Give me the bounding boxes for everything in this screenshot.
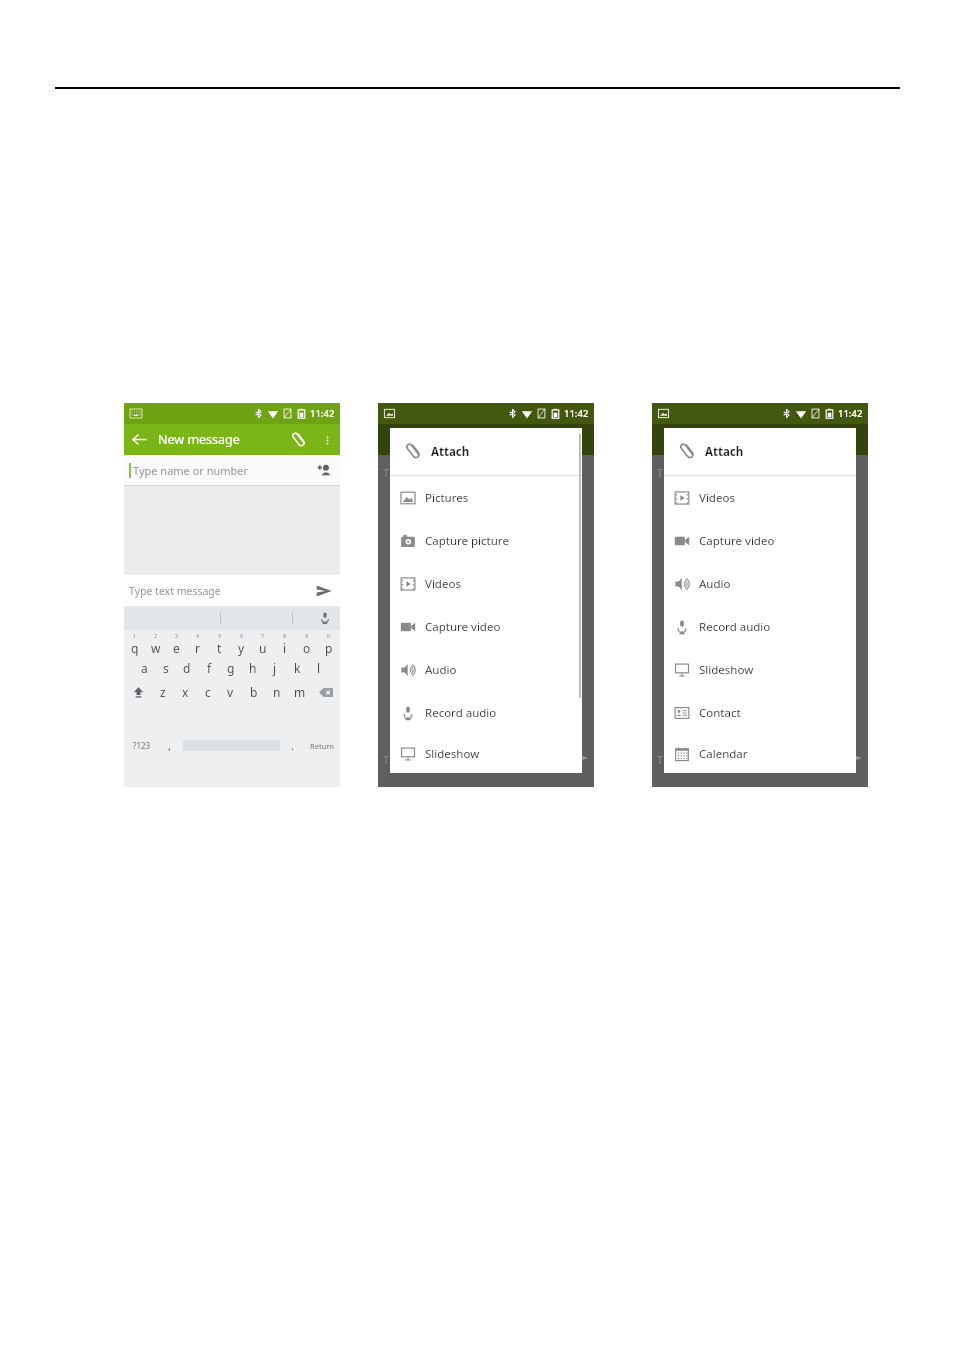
button[interactable]: Slideshow: [664, 648, 856, 691]
staticText: 7: [261, 632, 265, 639]
button[interactable]: 0: [318, 631, 340, 656]
button[interactable]: l: [308, 656, 330, 680]
button[interactable]: s: [155, 656, 176, 680]
button[interactable]: Capture video: [664, 519, 856, 562]
staticText: T: [383, 465, 390, 480]
button[interactable]: n: [265, 680, 288, 704]
staticText: Audio: [425, 662, 457, 678]
button[interactable]: Record audio: [664, 605, 856, 648]
button[interactable]: Backspace: [311, 680, 340, 704]
button[interactable]: ,: [159, 704, 180, 787]
button[interactable]: 3: [166, 631, 187, 656]
button[interactable]: Type name or number: [124, 455, 340, 485]
button[interactable]: f: [198, 656, 220, 680]
button[interactable]: Send: [312, 579, 336, 603]
button[interactable]: 7: [252, 631, 274, 656]
button[interactable]: m: [288, 680, 311, 704]
staticText: a: [141, 660, 148, 676]
button[interactable]: 8: [274, 631, 296, 656]
button[interactable]: z: [152, 680, 174, 704]
staticText: r: [195, 640, 200, 656]
staticText: Type name or number: [133, 463, 249, 478]
button[interactable]: 1: [124, 631, 145, 656]
button[interactable]: 6: [230, 631, 252, 656]
staticText: Capture picture: [425, 533, 509, 549]
button[interactable]: x: [174, 680, 196, 704]
button[interactable]: 9: [296, 631, 318, 656]
staticText: Calendar: [699, 746, 748, 762]
button[interactable]: Calendar: [664, 734, 856, 773]
staticText: y: [238, 640, 245, 656]
button[interactable]: Videos: [390, 562, 582, 605]
button[interactable]: Slideshow: [390, 734, 582, 773]
button[interactable]: Audio: [664, 562, 856, 605]
button[interactable]: 2: [145, 631, 166, 656]
button[interactable]: Voice input: [317, 610, 333, 626]
staticText: v: [227, 684, 234, 700]
button[interactable]: Capture picture: [390, 519, 582, 562]
staticText: Slideshow: [699, 662, 754, 678]
staticText: e: [173, 640, 180, 656]
button[interactable]: j: [264, 656, 286, 680]
staticText: .: [291, 738, 294, 753]
button[interactable]: k: [286, 656, 308, 680]
button[interactable]: More options: [314, 427, 340, 453]
button[interactable]: b: [242, 680, 265, 704]
button[interactable]: Attach: [664, 428, 856, 475]
staticText: T: [657, 752, 664, 767]
staticText: 3: [175, 632, 179, 639]
staticText: 0: [327, 632, 331, 639]
staticText: i: [283, 640, 287, 656]
staticText: Contact: [699, 705, 741, 721]
button[interactable]: a: [134, 656, 155, 680]
staticText: 5: [218, 632, 222, 639]
staticText: s: [163, 660, 169, 676]
button[interactable]: Videos: [664, 476, 856, 519]
staticText: 1: [133, 632, 137, 639]
staticText: o: [303, 640, 311, 656]
staticText: g: [227, 660, 235, 676]
staticText: 9: [305, 632, 309, 639]
button[interactable]: Attach: [390, 428, 582, 475]
staticText: j: [273, 660, 277, 676]
staticText: Pictures: [425, 490, 469, 506]
button[interactable]: Back: [124, 424, 155, 455]
button[interactable]: c: [196, 680, 219, 704]
button[interactable]: Type text message: [129, 584, 221, 598]
button[interactable]: h: [242, 656, 264, 680]
button[interactable]: g: [220, 656, 242, 680]
button[interactable]: Attach: [284, 425, 314, 455]
button[interactable]: .: [282, 704, 303, 787]
button[interactable]: v: [219, 680, 242, 704]
staticText: 8: [283, 632, 287, 639]
button[interactable]: Contact: [664, 691, 856, 734]
staticText: Capture video: [699, 533, 775, 549]
staticText: k: [294, 660, 301, 676]
staticText: Videos: [699, 490, 735, 506]
staticText: Attach: [705, 444, 744, 460]
button[interactable]: Record audio: [390, 691, 582, 734]
staticText: Capture video: [425, 619, 501, 635]
staticText: Videos: [425, 576, 461, 592]
staticText: 11:42: [838, 407, 863, 420]
button[interactable]: Shift: [124, 680, 152, 704]
button[interactable]: Capture video: [390, 605, 582, 648]
staticText: Attach: [431, 444, 470, 460]
button[interactable]: Audio: [390, 648, 582, 691]
staticText: t: [217, 640, 222, 656]
staticText: d: [183, 660, 191, 676]
button[interactable]: d: [176, 656, 198, 680]
button[interactable]: [180, 704, 282, 787]
button[interactable]: Return: [303, 704, 340, 787]
button[interactable]: ?123: [124, 704, 159, 787]
staticText: m: [294, 684, 306, 700]
button[interactable]: Add recipient: [313, 459, 335, 481]
staticText: b: [250, 684, 258, 700]
button[interactable]: Pictures: [390, 476, 582, 519]
staticText: q: [131, 640, 139, 656]
staticText: u: [259, 640, 267, 656]
button[interactable]: 5: [208, 631, 230, 656]
staticText: h: [249, 660, 257, 676]
button[interactable]: 4: [187, 631, 208, 656]
